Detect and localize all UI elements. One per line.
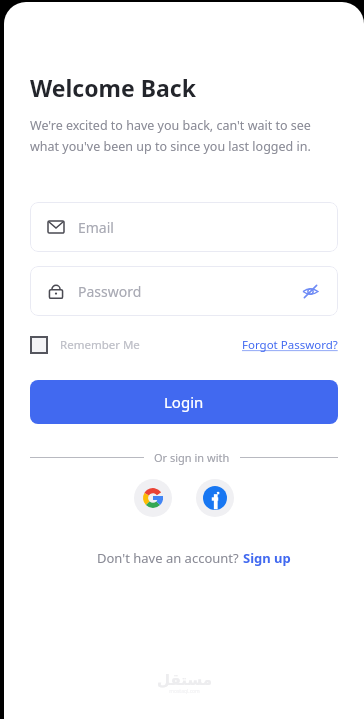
staticText: Forgot Password?: [242, 337, 338, 353]
button[interactable]: Email: [30, 202, 338, 252]
button[interactable]: Show password: [300, 281, 320, 301]
staticText: Welcome Back: [30, 72, 196, 103]
button[interactable]: Forgot Password?: [242, 337, 338, 353]
button[interactable]: Login: [30, 380, 338, 424]
staticText: مستقل: [157, 671, 212, 688]
staticText: We're excited to have you back, can't wa…: [30, 117, 311, 154]
staticText: Don't have an account?: [97, 549, 243, 567]
button[interactable]: Sign in with Google: [134, 479, 172, 517]
staticText: Login: [164, 392, 204, 412]
button[interactable]: Sign in with Facebook: [196, 479, 234, 517]
staticText: Email: [78, 218, 114, 237]
staticText: mostaql.com: [169, 688, 200, 695]
staticText: Or sign in with: [154, 450, 230, 465]
staticText: Password: [78, 282, 142, 301]
button[interactable]: Remember Me: [30, 336, 140, 354]
staticText: Sign up: [243, 549, 291, 567]
button[interactable]: Password: [30, 266, 338, 316]
staticText: Remember Me: [60, 337, 140, 353]
button[interactable]: Sign up: [243, 549, 291, 567]
